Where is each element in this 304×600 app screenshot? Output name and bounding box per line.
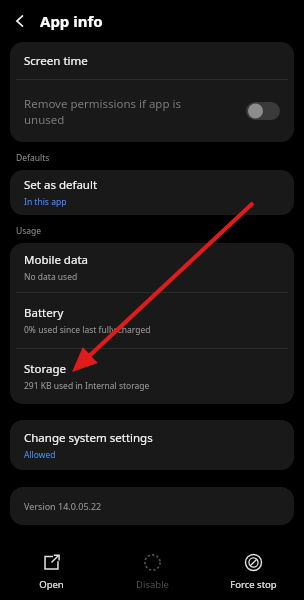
staticText: Usage bbox=[16, 225, 42, 237]
button[interactable]: Open bbox=[0, 549, 102, 595]
button[interactable]: Back bbox=[0, 0, 40, 42]
staticText: Change system settings bbox=[24, 430, 153, 446]
staticText: Defaults bbox=[16, 152, 50, 164]
staticText: Mobile data bbox=[24, 252, 88, 268]
other: Force stop bbox=[244, 553, 263, 572]
staticText: Allowed bbox=[24, 449, 56, 461]
other: Open bbox=[42, 553, 61, 572]
button[interactable]: Set as default bbox=[10, 170, 294, 215]
button[interactable]: Remove permissions if app is unused bbox=[10, 80, 294, 142]
button[interactable]: Force stop bbox=[203, 549, 304, 595]
staticText: In this app bbox=[24, 196, 67, 208]
other: Disable bbox=[143, 553, 162, 572]
staticText: No data used bbox=[24, 271, 78, 283]
staticText: 291 KB used in Internal storage bbox=[24, 380, 150, 392]
button[interactable]: Remove permissions if app is unused togg… bbox=[246, 102, 280, 120]
button[interactable]: Storage bbox=[10, 349, 294, 404]
staticText: 0% used since last fully charged bbox=[24, 324, 151, 336]
staticText: Force stop bbox=[230, 578, 277, 591]
button[interactable]: Battery bbox=[10, 293, 294, 348]
staticText: Version 14.0.05.22 bbox=[24, 500, 102, 512]
button[interactable]: Screen time bbox=[10, 42, 294, 79]
staticText: Disable bbox=[136, 578, 169, 591]
staticText: Storage bbox=[24, 361, 66, 377]
button[interactable]: Mobile data bbox=[10, 243, 294, 292]
staticText: Open bbox=[39, 578, 64, 591]
staticText: Battery bbox=[24, 305, 64, 321]
staticText: Set as default bbox=[24, 177, 98, 193]
button[interactable]: Disable bbox=[102, 549, 203, 595]
button[interactable]: Change system settings bbox=[10, 420, 294, 470]
staticText: App info bbox=[40, 11, 103, 31]
staticText: Screen time bbox=[24, 53, 88, 69]
staticText: Remove permissions if app is unused bbox=[24, 96, 181, 127]
